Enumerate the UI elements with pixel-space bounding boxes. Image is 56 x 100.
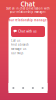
button[interactable]: Chat with us: [11, 26, 45, 37]
button[interactable]: Accounts: [8, 83, 18, 93]
staticText: Message us: [11, 47, 26, 51]
button[interactable]: Chat: [28, 83, 38, 93]
button[interactable]: Our FAQs: [11, 51, 45, 55]
button[interactable]: Payments: [18, 83, 28, 93]
staticText: Chat with us: [18, 30, 36, 33]
staticText: Your relationship manager: [8, 18, 48, 22]
staticText: Chat: [20, 0, 35, 8]
staticText: Start an in-chat conversation with: [6, 7, 50, 10]
staticText: Find a branch: [11, 43, 29, 46]
staticText: Our FAQs: [11, 51, 23, 55]
button[interactable]: Find a branch: [11, 43, 45, 47]
staticText: Call us: [11, 39, 20, 42]
button[interactable]: Message us: [11, 47, 45, 51]
staticText: your relationship manager.: [9, 10, 46, 14]
button[interactable]: Call us: [11, 38, 45, 43]
button[interactable]: More: [38, 83, 48, 93]
